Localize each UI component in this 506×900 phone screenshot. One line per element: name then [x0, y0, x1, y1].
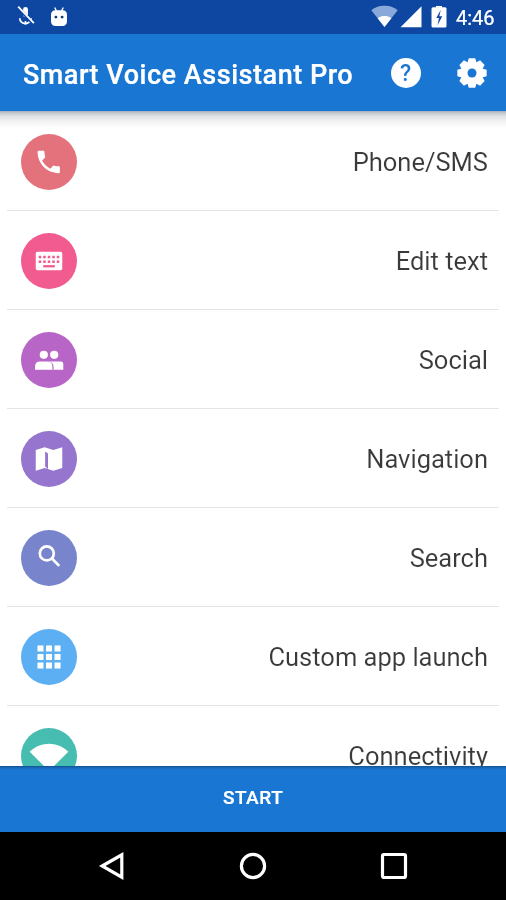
- staticText: Social: [78, 345, 488, 375]
- staticText: Connectivity: [78, 741, 488, 771]
- staticText: Custom app launch: [78, 642, 488, 672]
- staticText: Navigation: [78, 444, 488, 474]
- staticText: ?: [400, 60, 412, 87]
- button[interactable]: Custom app launch: [0, 607, 506, 706]
- button[interactable]: Help: [382, 49, 430, 97]
- staticText: Phone/SMS: [78, 147, 488, 177]
- button[interactable]: Connectivity: [0, 706, 506, 805]
- button[interactable]: Search: [0, 508, 506, 607]
- staticText: START: [223, 786, 284, 808]
- staticText: Search: [78, 543, 488, 573]
- button[interactable]: Edit text: [0, 211, 506, 310]
- button[interactable]: Recents: [370, 842, 418, 890]
- staticText: 4:46: [456, 6, 495, 29]
- button[interactable]: Settings: [448, 49, 496, 97]
- staticText: Smart Voice Assistant Pro: [23, 59, 354, 91]
- button[interactable]: Phone/SMS: [0, 112, 506, 211]
- button[interactable]: Navigation: [0, 409, 506, 508]
- button[interactable]: Social: [0, 310, 506, 409]
- staticText: Edit text: [78, 246, 488, 276]
- button[interactable]: Home: [229, 842, 277, 890]
- button[interactable]: Back: [88, 842, 136, 890]
- button[interactable]: START: [0, 766, 506, 832]
